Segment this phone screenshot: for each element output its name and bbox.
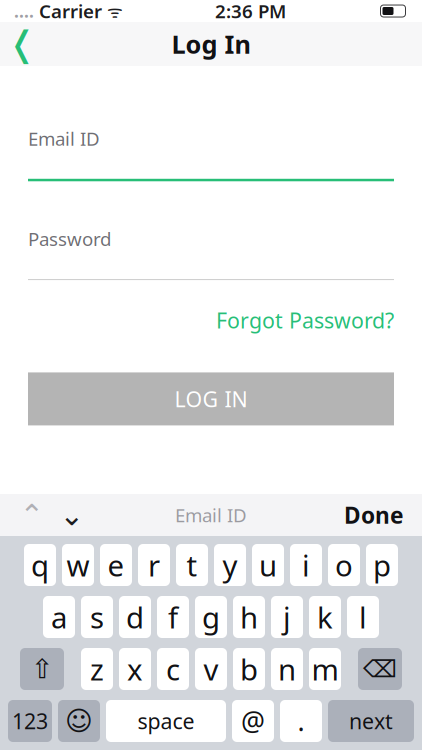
staticText: . bbox=[297, 703, 304, 739]
button[interactable]: e bbox=[100, 544, 132, 586]
staticText: Email ID bbox=[175, 503, 247, 527]
button[interactable]: y bbox=[214, 544, 246, 586]
staticText: ⌫ bbox=[363, 655, 397, 683]
button[interactable]: a bbox=[43, 596, 75, 638]
button[interactable]: ☺ bbox=[58, 700, 100, 742]
staticText: f bbox=[168, 597, 178, 636]
staticText: k bbox=[317, 597, 333, 636]
staticText: m bbox=[311, 649, 338, 688]
button[interactable]: next bbox=[328, 700, 414, 742]
staticText: ☺ bbox=[65, 706, 93, 736]
staticText: e bbox=[107, 545, 124, 584]
staticText: a bbox=[51, 597, 67, 636]
button[interactable]: ⇧ bbox=[20, 648, 64, 690]
button[interactable]: n bbox=[271, 648, 303, 690]
staticText: s bbox=[90, 597, 104, 636]
staticText: space bbox=[137, 707, 194, 735]
button[interactable]: Done bbox=[338, 500, 410, 530]
button[interactable]: Previous field bbox=[12, 496, 52, 534]
button[interactable]: u bbox=[252, 544, 284, 586]
staticText: p bbox=[373, 545, 391, 584]
button[interactable]: j bbox=[271, 596, 303, 638]
staticText: Password bbox=[28, 226, 111, 251]
button[interactable]: v bbox=[195, 648, 227, 690]
staticText: ⇧ bbox=[31, 654, 53, 684]
staticText: Email ID bbox=[28, 126, 100, 151]
staticText: ⌃ bbox=[19, 498, 44, 532]
button[interactable]: 123 bbox=[8, 700, 52, 742]
staticText: Done bbox=[344, 500, 404, 530]
staticText: g bbox=[202, 597, 220, 636]
button[interactable]: g bbox=[195, 596, 227, 638]
staticText: z bbox=[90, 649, 104, 688]
staticText: o bbox=[335, 545, 353, 584]
staticText: l bbox=[359, 597, 367, 636]
staticText: 2:36 PM bbox=[215, 0, 286, 23]
staticText: t bbox=[186, 545, 197, 584]
button[interactable]: Next field bbox=[52, 496, 92, 534]
staticText: b bbox=[240, 649, 258, 688]
staticText: r bbox=[148, 545, 160, 584]
button[interactable]: m bbox=[309, 648, 341, 690]
staticText: v bbox=[203, 649, 218, 688]
button[interactable]: Forgot Password? bbox=[216, 302, 394, 338]
button[interactable]: k bbox=[309, 596, 341, 638]
button[interactable]: z bbox=[81, 648, 113, 690]
button[interactable]: b bbox=[233, 648, 265, 690]
staticText: ❬ bbox=[7, 24, 36, 64]
staticText: w bbox=[66, 545, 89, 584]
staticText: h bbox=[240, 597, 258, 636]
button[interactable]: p bbox=[366, 544, 398, 586]
staticText: i bbox=[302, 545, 310, 584]
button[interactable]: f bbox=[157, 596, 189, 638]
button[interactable]: r bbox=[138, 544, 170, 586]
button[interactable]: t bbox=[176, 544, 208, 586]
staticText: @ bbox=[241, 703, 265, 739]
staticText: next bbox=[349, 707, 393, 735]
button[interactable]: c bbox=[157, 648, 189, 690]
button[interactable]: q bbox=[24, 544, 56, 586]
button[interactable]: Back bbox=[0, 23, 44, 65]
staticText: y bbox=[222, 545, 237, 584]
button[interactable]: . bbox=[280, 700, 322, 742]
staticText: j bbox=[283, 597, 291, 636]
staticText: c bbox=[166, 649, 180, 688]
button[interactable]: i bbox=[290, 544, 322, 586]
staticText: Log In bbox=[171, 27, 250, 61]
staticText: u bbox=[259, 545, 277, 584]
button[interactable]: l bbox=[347, 596, 379, 638]
staticText: n bbox=[278, 649, 296, 688]
staticText: ⌄ bbox=[59, 498, 84, 532]
staticText: 123 bbox=[12, 707, 48, 735]
button[interactable]: space bbox=[106, 700, 226, 742]
staticText: ᯤ bbox=[102, 0, 123, 22]
button[interactable]: @ bbox=[232, 700, 274, 742]
staticText: .... bbox=[14, 0, 34, 22]
button[interactable]: d bbox=[119, 596, 151, 638]
staticText: LOG IN bbox=[174, 385, 247, 413]
staticText: x bbox=[127, 649, 143, 688]
button[interactable]: o bbox=[328, 544, 360, 586]
button[interactable]: x bbox=[119, 648, 151, 690]
button[interactable]: LOG IN bbox=[28, 372, 394, 425]
staticText: q bbox=[31, 545, 49, 584]
button[interactable]: s bbox=[81, 596, 113, 638]
button[interactable]: h bbox=[233, 596, 265, 638]
button[interactable]: w bbox=[62, 544, 94, 586]
staticText: Carrier bbox=[34, 0, 102, 23]
button[interactable]: ⌫ bbox=[358, 648, 402, 690]
staticText: d bbox=[126, 597, 144, 636]
staticText: Forgot Password? bbox=[216, 306, 394, 334]
